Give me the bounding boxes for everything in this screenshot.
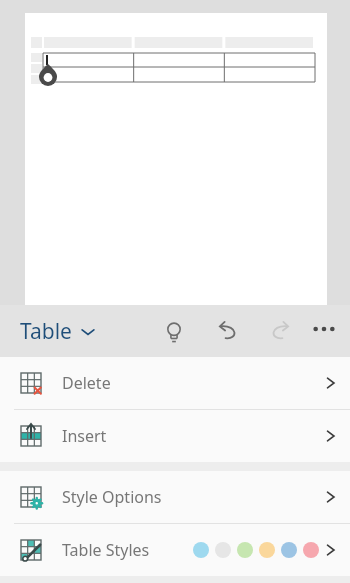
button[interactable]: Table [0,311,103,352]
button[interactable]: More options [302,309,346,353]
staticText: Delete [62,372,111,394]
staticText: Table [20,317,72,346]
button[interactable]: Undo [206,309,250,353]
button[interactable]: Redo [258,309,302,353]
staticText: Insert [62,425,107,447]
button[interactable]: Tell me what you want to do [152,309,196,353]
staticText: Style Options [62,486,162,508]
button[interactable]: Delete [0,357,350,409]
button[interactable]: Style Options [0,471,350,523]
button[interactable]: Insert [0,410,350,462]
button[interactable]: Table Styles [0,524,350,576]
staticText: Table Styles [62,539,150,561]
